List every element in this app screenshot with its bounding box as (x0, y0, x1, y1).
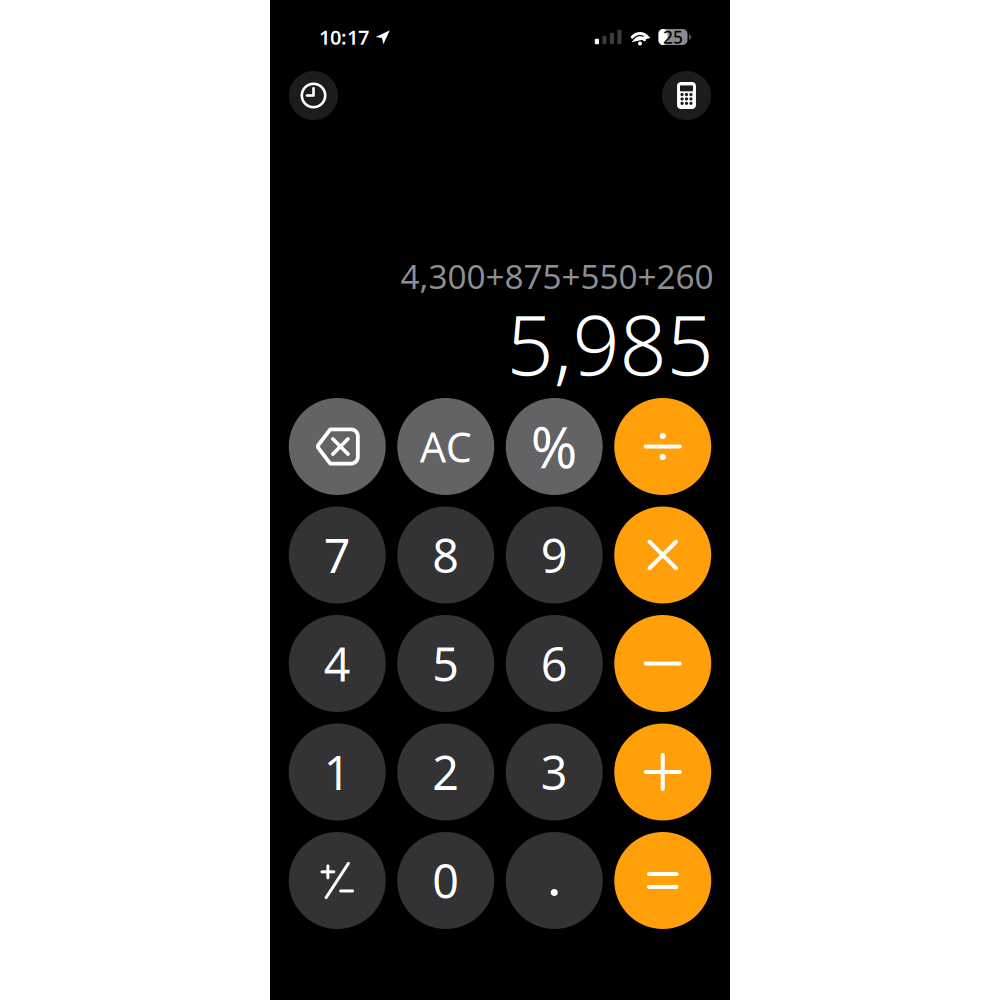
staticText: 3 (541, 741, 568, 803)
button[interactable]: 1 (289, 723, 386, 820)
staticText: 0 (432, 849, 459, 911)
button[interactable] (614, 723, 711, 820)
button[interactable] (614, 506, 711, 603)
staticText: 8 (432, 524, 459, 586)
staticText: 7 (324, 524, 351, 586)
staticText: 5,985 (506, 288, 713, 398)
button[interactable]: 5 (397, 615, 494, 712)
button[interactable]: 4 (289, 615, 386, 712)
staticText: 1 (324, 741, 351, 803)
staticText: 6 (541, 632, 568, 694)
staticText: % (531, 409, 578, 484)
button[interactable]: AC (397, 398, 494, 495)
button[interactable]: 3 (506, 723, 603, 820)
staticText: 5 (432, 632, 459, 694)
button[interactable]: History (289, 71, 338, 120)
button[interactable] (614, 832, 711, 929)
button[interactable]: 0 (397, 832, 494, 929)
button[interactable] (614, 398, 711, 495)
staticText: 4 (324, 632, 351, 694)
button[interactable] (506, 832, 603, 929)
button[interactable] (289, 398, 386, 495)
button[interactable]: 9 (506, 506, 603, 603)
staticText: 2 (432, 741, 459, 803)
button[interactable]: 7 (289, 506, 386, 603)
staticText: AC (420, 419, 472, 474)
button[interactable]: 6 (506, 615, 603, 712)
button[interactable]: 2 (397, 723, 494, 820)
staticText: 10:17 (319, 24, 369, 50)
button[interactable]: Calculator mode (662, 71, 711, 120)
button[interactable] (614, 615, 711, 712)
staticText: 25 (663, 25, 683, 48)
staticText: 9 (541, 524, 568, 586)
staticText: 4,300+875+550+260 (400, 254, 713, 298)
button[interactable] (289, 832, 386, 929)
button[interactable]: % (506, 398, 603, 495)
button[interactable]: 8 (397, 506, 494, 603)
